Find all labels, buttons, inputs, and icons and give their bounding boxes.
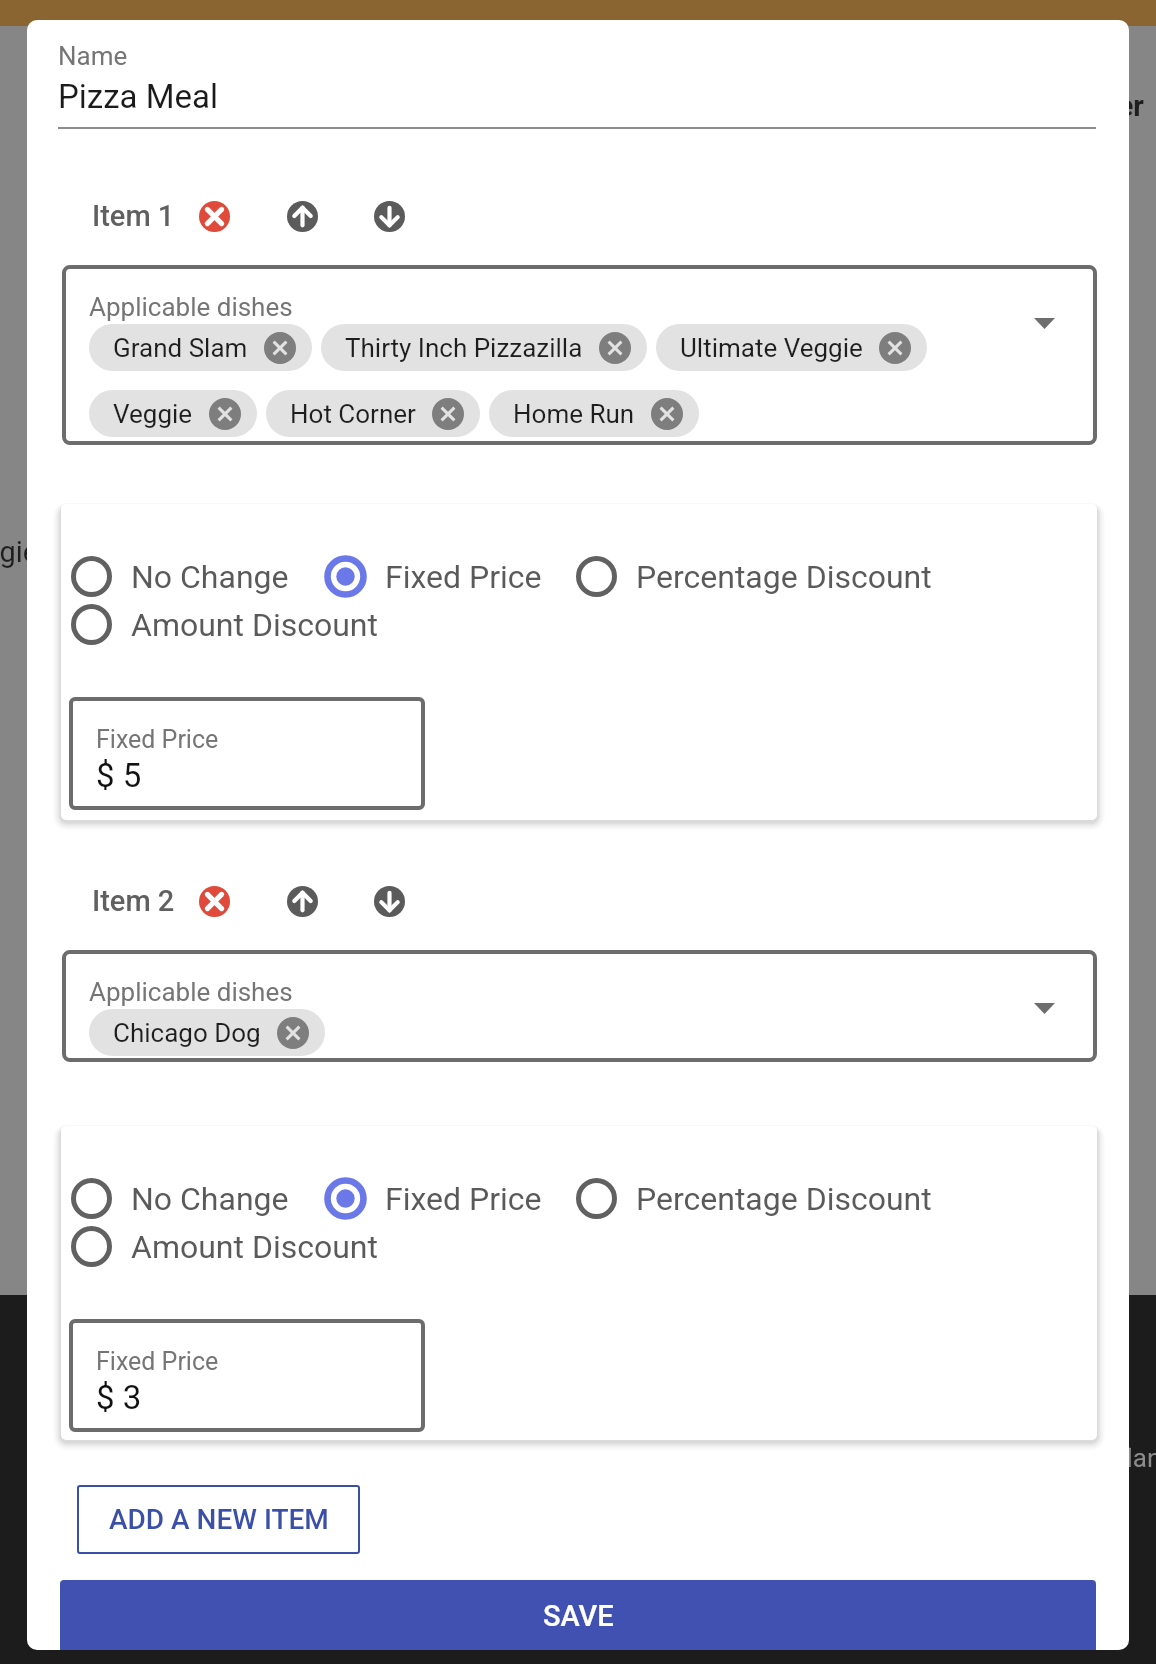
button[interactable]: Move up: [280, 194, 324, 238]
button[interactable]: Amount Discount: [69, 603, 378, 647]
button[interactable]: Applicable dishes: [62, 265, 1097, 445]
button[interactable]: Amount Discount: [69, 1225, 378, 1269]
button[interactable]: Applicable dishes: [62, 950, 1097, 1062]
button[interactable]: Move up: [280, 879, 324, 923]
staticText: SAVE: [543, 1599, 614, 1633]
staticText: Ultimate Veggie: [680, 333, 863, 363]
staticText: Item 2: [92, 884, 175, 918]
button[interactable]: Expand dishes: [1024, 303, 1064, 343]
staticText: Fixed Price: [96, 1347, 219, 1376]
staticText: Home Run: [513, 399, 635, 429]
staticText: No Change: [131, 558, 289, 596]
staticText: Item 1: [92, 199, 175, 233]
button[interactable]: Thirty Inch Pizzazilla: [321, 324, 647, 371]
button[interactable]: ADD A NEW ITEM: [77, 1485, 360, 1554]
staticText: Fixed Price: [385, 1180, 542, 1218]
button[interactable]: Delete item: [192, 879, 236, 923]
staticText: Percentage Discount: [636, 1180, 932, 1218]
button[interactable]: Move down: [367, 879, 411, 923]
staticText: Fixed Price: [385, 558, 542, 596]
staticText: $ 3: [96, 1378, 142, 1417]
button[interactable]: Delete item: [192, 194, 236, 238]
staticText: Amount Discount: [131, 1228, 378, 1266]
staticText: Amount Discount: [131, 606, 378, 644]
staticText: Percentage Discount: [636, 558, 932, 596]
button[interactable]: Fixed Price: [323, 1177, 542, 1221]
staticText: Chicago Dog: [113, 1018, 261, 1048]
staticText: Veggie: [0, 535, 39, 569]
staticText: Fixed Price: [96, 725, 219, 754]
button[interactable]: Chicago Dog: [89, 1009, 325, 1056]
staticText: Order: [1071, 89, 1144, 123]
button[interactable]: Percentage Discount: [574, 555, 932, 599]
staticText: Pizza Meal: [58, 77, 219, 116]
button[interactable]: Move down: [367, 194, 411, 238]
staticText: Veggie: [113, 399, 193, 429]
staticText: $ 5: [96, 756, 142, 795]
button[interactable]: Veggie: [89, 390, 257, 437]
staticText: ADD A NEW ITEM: [109, 1503, 329, 1536]
button[interactable]: No Change: [69, 1177, 289, 1221]
button[interactable]: Fixed Price: [323, 555, 542, 599]
button[interactable]: Home Run: [489, 390, 699, 437]
button[interactable]: Grand Slam: [89, 324, 312, 371]
button[interactable]: No Change: [69, 555, 289, 599]
button[interactable]: Fixed Price: [69, 697, 425, 810]
staticText: Applicable dishes: [89, 292, 293, 322]
button[interactable]: Hot Corner: [266, 390, 480, 437]
staticText: Hot Corner: [290, 399, 416, 429]
staticText: Thirty Inch Pizzazilla: [345, 333, 583, 363]
button[interactable]: Fixed Price: [69, 1319, 425, 1432]
staticText: flan: [1118, 1443, 1156, 1473]
button[interactable]: Name: [58, 34, 1096, 129]
staticText: No Change: [131, 1180, 289, 1218]
button[interactable]: Percentage Discount: [574, 1177, 932, 1221]
staticText: Name: [58, 41, 128, 71]
button[interactable]: Expand dishes: [1024, 988, 1064, 1028]
button[interactable]: SAVE: [60, 1580, 1096, 1650]
staticText: Grand Slam: [113, 333, 248, 363]
staticText: Applicable dishes: [89, 977, 293, 1007]
button[interactable]: Ultimate Veggie: [656, 324, 927, 371]
